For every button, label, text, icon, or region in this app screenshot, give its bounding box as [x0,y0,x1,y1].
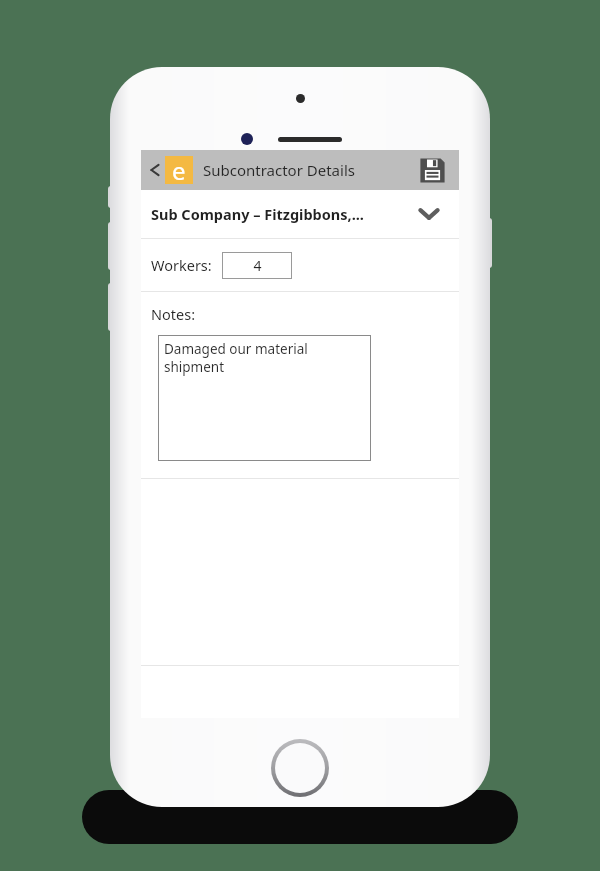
button[interactable]: Save [417,155,447,185]
button[interactable]: Sub Company – Fitzgibbons,... [141,190,459,238]
staticText: Sub Company – Fitzgibbons,... [151,204,364,224]
staticText: Damaged our material shipment [164,340,308,376]
button[interactable]: Home [271,739,329,797]
staticText: e [172,154,186,182]
staticText: Workers: [151,255,212,275]
button[interactable]: Damaged our material shipment [158,335,371,461]
staticText: 4 [253,256,262,275]
staticText: Notes: [151,304,196,324]
staticText: Subcontractor Details [203,160,355,180]
button[interactable]: Back [141,156,197,184]
button[interactable]: 4 [222,252,292,279]
